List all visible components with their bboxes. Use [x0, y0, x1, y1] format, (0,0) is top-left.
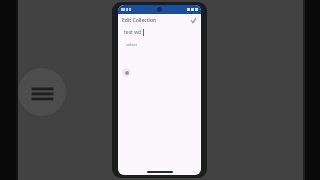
staticText: select	[126, 42, 137, 47]
button[interactable]: select	[118, 39, 201, 50]
button[interactable]: test wd	[118, 26, 201, 39]
staticText: test wd	[124, 29, 142, 36]
button[interactable]: Add item	[122, 68, 131, 77]
button[interactable]: Open navigation drawer	[28, 80, 56, 108]
button[interactable]: Save	[189, 16, 198, 25]
staticText: Edit Collection	[122, 17, 157, 24]
